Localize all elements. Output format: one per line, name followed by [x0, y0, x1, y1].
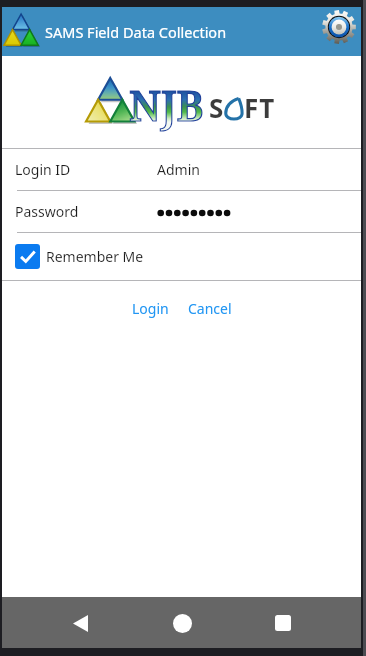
button[interactable]: Remember Me: [2, 233, 361, 280]
staticText: Login: [132, 299, 169, 318]
staticText: NJB: [129, 77, 204, 133]
staticText: Login ID: [15, 160, 71, 179]
button[interactable]: Settings: [313, 9, 359, 55]
button[interactable]: Cancel: [182, 296, 238, 321]
staticText: NJB: [129, 77, 204, 133]
staticText: SAMS Field Data Collection: [45, 22, 227, 42]
staticText: Remember Me: [46, 247, 144, 266]
staticText: Password: [15, 202, 79, 221]
button[interactable]: Home: [158, 599, 206, 647]
staticText: S: [209, 90, 224, 125]
button[interactable]: Password: [2, 191, 361, 232]
staticText: Cancel: [188, 299, 232, 318]
button[interactable]: Recents: [259, 599, 307, 647]
button[interactable]: Login ID: [2, 149, 361, 190]
staticText: FT: [244, 90, 276, 125]
button[interactable]: Login: [126, 296, 175, 321]
button[interactable]: Back: [56, 599, 104, 647]
staticText: Admin: [157, 160, 200, 179]
